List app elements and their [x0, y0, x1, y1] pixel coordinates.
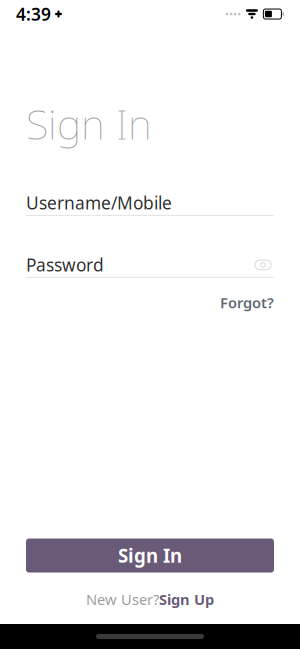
button[interactable]: New User?	[86, 585, 214, 613]
staticText: Sign Up	[159, 589, 214, 609]
staticText: New User?	[86, 589, 159, 609]
staticText: Username/Mobile	[26, 191, 172, 214]
button[interactable]: Forgot?	[220, 290, 274, 315]
staticText: Sign In	[118, 543, 182, 568]
staticText: 4:39	[16, 2, 51, 25]
button[interactable]: Show password	[252, 256, 274, 274]
staticText: Forgot?	[220, 293, 274, 312]
button[interactable]: Sign In	[26, 538, 274, 572]
staticText: Sign In	[26, 96, 152, 151]
staticText: Password	[26, 253, 104, 276]
